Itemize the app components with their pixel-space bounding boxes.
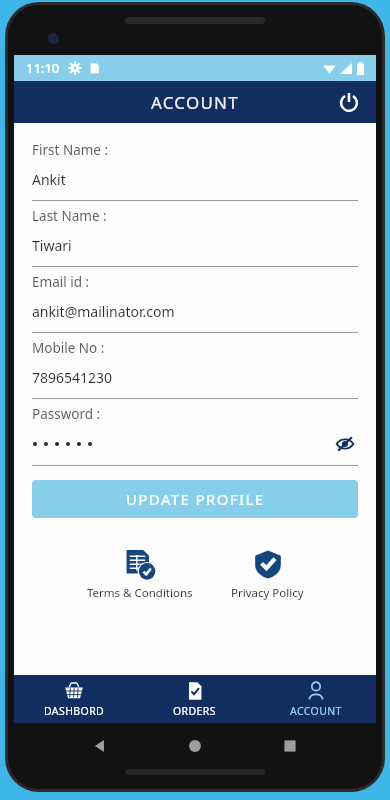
staticText: Mobile No :: [32, 339, 105, 357]
button[interactable]: Terms & Conditions: [79, 548, 201, 601]
other: Back: [91, 737, 109, 755]
staticText: UPDATE PROFILE: [126, 489, 265, 509]
staticText: ORDERS: [173, 704, 216, 718]
button[interactable]: Mobile No :: [14, 333, 376, 399]
staticText: ACCOUNT: [290, 704, 342, 718]
staticText: Last Name :: [32, 207, 107, 225]
staticText: First Name :: [32, 141, 109, 159]
staticText: 11:10: [26, 59, 60, 77]
staticText: 7896541230: [32, 368, 113, 387]
button[interactable]: Last Name :: [14, 201, 376, 267]
button[interactable]: Privacy Policy: [223, 548, 312, 601]
button[interactable]: ACCOUNT: [255, 675, 376, 723]
staticText: ACCOUNT: [151, 91, 239, 114]
button[interactable]: ORDERS: [134, 675, 255, 723]
button[interactable]: First Name :: [14, 135, 376, 201]
staticText: Email id :: [32, 273, 90, 291]
staticText: Privacy Policy: [231, 585, 304, 601]
staticText: Terms & Conditions: [87, 585, 193, 601]
staticText: ankit@mailinator.com: [32, 302, 175, 321]
button[interactable]: UPDATE PROFILE: [32, 480, 358, 518]
staticText: Tiwari: [32, 236, 72, 255]
button[interactable]: Email id :: [14, 267, 376, 333]
other: Recents: [281, 737, 299, 755]
staticText: Ankit: [32, 170, 66, 189]
button[interactable]: Password :: [14, 399, 376, 466]
button[interactable]: Toggle password visibility: [332, 431, 358, 457]
button[interactable]: Logout: [334, 87, 364, 117]
staticText: DASHBORD: [44, 704, 105, 718]
staticText: Password :: [32, 405, 101, 423]
button[interactable]: DASHBORD: [14, 675, 134, 723]
other: Home: [186, 737, 204, 755]
